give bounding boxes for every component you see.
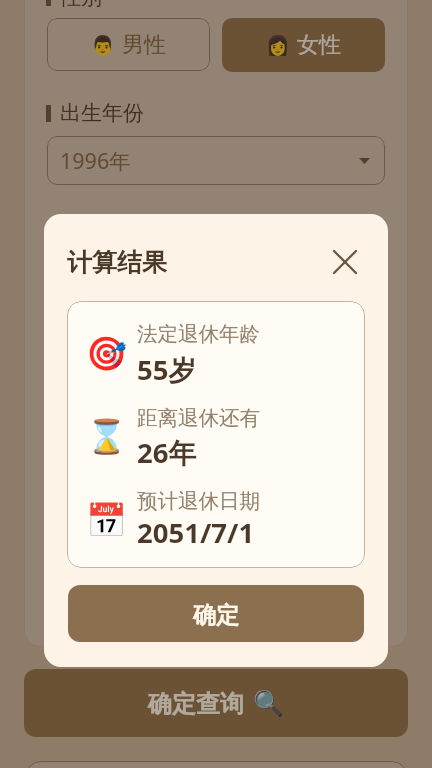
button[interactable]: 确定 bbox=[68, 585, 364, 642]
button[interactable]: 👨 bbox=[47, 18, 210, 71]
button[interactable]: 确定查询 bbox=[24, 669, 408, 737]
button[interactable]: Close bbox=[323, 240, 367, 284]
staticText: ⌛ bbox=[86, 417, 128, 456]
staticText: 55岁 bbox=[137, 351, 196, 389]
staticText: 2051/7/1 bbox=[137, 514, 255, 551]
staticText: 预计退休日期 bbox=[137, 488, 260, 514]
button[interactable]: 1996年 bbox=[47, 136, 385, 185]
button[interactable]: 👩 bbox=[222, 18, 385, 72]
staticText: 26年 bbox=[137, 434, 196, 472]
staticText: 👨 bbox=[91, 34, 115, 56]
staticText: 👩 bbox=[266, 34, 290, 56]
staticText: 🔍 bbox=[253, 689, 285, 718]
staticText: 1996年 bbox=[60, 146, 131, 175]
staticText: 计算结果 bbox=[67, 247, 167, 278]
staticText: 📅 bbox=[86, 501, 128, 540]
staticText: 距离退休还有 bbox=[137, 405, 260, 431]
staticText: 性别 bbox=[60, 0, 102, 10]
staticText: 确定 bbox=[193, 601, 239, 630]
staticText: 女性 bbox=[297, 31, 341, 59]
staticText: 法定退休年龄 bbox=[137, 321, 260, 347]
staticText: 确定查询 bbox=[148, 689, 244, 719]
staticText: 男性 bbox=[122, 31, 166, 59]
staticText: 🎯 bbox=[86, 334, 128, 373]
other: Expand year list bbox=[359, 158, 370, 164]
staticText: 出生年份 bbox=[60, 100, 144, 126]
